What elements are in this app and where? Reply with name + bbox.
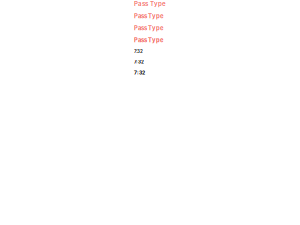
staticText: 7:32 — [134, 70, 145, 76]
staticText: 7:32 — [134, 49, 143, 54]
staticText: Pass Type — [134, 37, 163, 44]
staticText: Pass Type — [134, 25, 163, 32]
staticText: 7:32 — [134, 59, 144, 65]
staticText: Pass Type — [134, 12, 164, 20]
staticText: Pass Type — [134, 0, 166, 7]
